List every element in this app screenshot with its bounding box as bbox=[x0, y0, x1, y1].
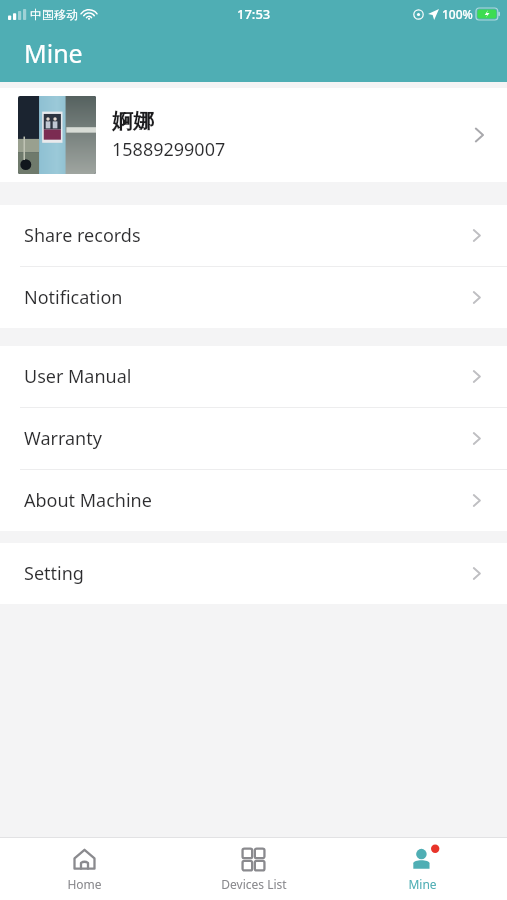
staticText: 100% bbox=[442, 6, 473, 22]
button[interactable]: About Machine bbox=[0, 470, 507, 531]
staticText: Notification bbox=[24, 285, 468, 310]
staticText: Mine bbox=[408, 876, 437, 892]
button[interactable]: Devices List bbox=[169, 838, 338, 900]
button[interactable]: Share records bbox=[0, 205, 507, 266]
staticText: Warranty bbox=[24, 426, 468, 451]
staticText: 中国移动 bbox=[30, 7, 78, 22]
staticText: 婀娜 bbox=[112, 108, 154, 134]
staticText: Devices List bbox=[221, 876, 287, 892]
button[interactable]: Warranty bbox=[0, 408, 507, 469]
staticText: Setting bbox=[24, 561, 468, 586]
staticText: About Machine bbox=[24, 488, 468, 513]
staticText: 17:53 bbox=[237, 5, 271, 23]
button[interactable]: User Manual bbox=[0, 346, 507, 407]
staticText: 15889299007 bbox=[112, 137, 226, 162]
button[interactable]: Home bbox=[0, 838, 169, 900]
staticText: Share records bbox=[24, 223, 468, 248]
staticText: Home bbox=[67, 876, 102, 892]
button[interactable]: 婀娜 bbox=[0, 88, 507, 182]
staticText: Mine bbox=[24, 36, 83, 70]
button[interactable]: Notification bbox=[0, 267, 507, 328]
button[interactable]: Mine bbox=[338, 838, 507, 900]
button[interactable]: Setting bbox=[0, 543, 507, 604]
staticText: User Manual bbox=[24, 364, 468, 389]
